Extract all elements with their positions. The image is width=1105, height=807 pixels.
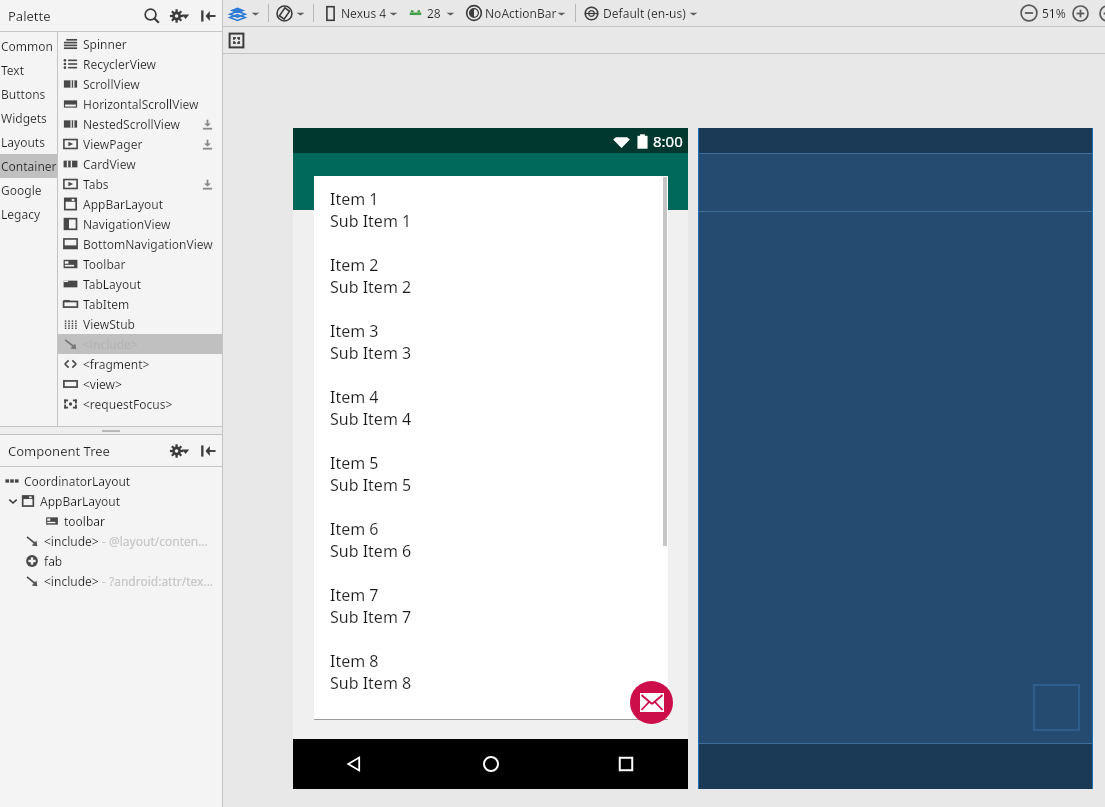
button[interactable]: Home (478, 751, 504, 777)
button[interactable]: Tree settings (169, 441, 189, 461)
button[interactable]: Show constraints (229, 33, 244, 48)
button[interactable]: fab outline (1033, 684, 1080, 731)
staticText: Item 4 (330, 386, 379, 408)
staticText: - @layout/conten... (102, 533, 208, 549)
staticText: Item 7 (330, 584, 379, 606)
button[interactable]: Orientation (276, 5, 293, 22)
button[interactable]: TabItem (58, 294, 222, 314)
staticText: Toolbar (83, 256, 126, 272)
button[interactable]: fab (0, 551, 222, 571)
staticText: toolbar (64, 513, 106, 529)
staticText: Sub Item 1 (330, 210, 412, 232)
button[interactable]: <include> (0, 571, 222, 591)
button[interactable]: Spinner (58, 34, 222, 54)
staticText: Item 6 (330, 518, 379, 540)
staticText: Sub Item 5 (330, 474, 412, 496)
button[interactable]: <include> (0, 531, 222, 551)
button[interactable]: <fragment> (58, 354, 222, 374)
staticText: - ?android:attr/tex... (102, 573, 214, 589)
button[interactable]: API level 28 (408, 7, 423, 20)
button[interactable]: Tabs (58, 174, 222, 194)
staticText: TabItem (83, 296, 130, 312)
button[interactable]: Containers (0, 154, 57, 178)
button[interactable]: NestedScrollView (58, 114, 222, 134)
staticText: ViewStub (83, 316, 135, 332)
button[interactable]: Zoom out (1020, 4, 1038, 22)
button[interactable]: Common (0, 34, 57, 58)
button[interactable]: Back (341, 751, 367, 777)
staticText: Google (1, 182, 42, 198)
button[interactable]: <requestFocus> (58, 394, 222, 414)
staticText: 51% (1042, 5, 1066, 21)
staticText: Nexus 4 (341, 5, 387, 21)
button[interactable]: ViewStub (58, 314, 222, 334)
staticText: TabLayout (83, 276, 141, 292)
staticText: Sub Item 8 (330, 672, 412, 694)
staticText: NestedScrollView (83, 116, 180, 132)
staticText: 8:00 (653, 131, 683, 151)
staticText: Spinner (83, 36, 127, 52)
staticText: <include> (44, 533, 99, 549)
staticText: BottomNavigationView (83, 236, 213, 252)
staticText: AppBarLayout (40, 493, 121, 509)
staticText: Item 5 (330, 452, 379, 474)
button[interactable]: TabLayout (58, 274, 222, 294)
staticText: Common (1, 38, 53, 54)
button[interactable]: RecyclerView (58, 54, 222, 74)
button[interactable]: Widgets (0, 106, 57, 130)
button[interactable]: Hide palette (199, 7, 217, 25)
button[interactable]: CardView (58, 154, 222, 174)
button[interactable]: Locale: Default (en-us) (584, 6, 599, 21)
staticText: NoActionBar (485, 5, 557, 21)
button[interactable]: Palette settings (169, 6, 189, 26)
button[interactable]: Hide tree (199, 442, 217, 460)
button[interactable]: Text (0, 58, 57, 82)
staticText: 28 (427, 5, 441, 21)
button[interactable]: Legacy (0, 202, 57, 226)
button[interactable]: Search (143, 7, 161, 25)
staticText: Item 3 (330, 320, 379, 342)
staticText: Widgets (1, 110, 47, 126)
button[interactable]: AppBarLayout (58, 194, 222, 214)
button[interactable]: HorizontalScrollView (58, 94, 222, 114)
staticText: Sub Item 4 (330, 408, 412, 430)
staticText: Text (1, 62, 25, 78)
button[interactable]: CoordinatorLayout (0, 471, 222, 491)
button[interactable]: AppBarLayout (0, 491, 222, 511)
button[interactable]: Device: Nexus 4 (323, 5, 338, 22)
staticText: ViewPager (83, 136, 143, 152)
staticText: ScrollView (83, 76, 140, 92)
staticText: Item 2 (330, 254, 379, 276)
staticText: Sub Item 7 (330, 606, 412, 628)
button[interactable]: NavigationView (58, 214, 222, 234)
staticText: <fragment> (83, 356, 150, 372)
button[interactable]: Theme: NoActionBar (466, 5, 482, 21)
button[interactable]: ScrollView (58, 74, 222, 94)
button[interactable]: <view> (58, 374, 222, 394)
button[interactable]: BottomNavigationView (58, 234, 222, 254)
staticText: CardView (83, 156, 136, 172)
staticText: Layouts (1, 134, 45, 150)
staticText: Palette (8, 7, 51, 25)
button[interactable]: Recents (613, 751, 639, 777)
button[interactable]: Toolbar (58, 254, 222, 274)
staticText: Default (en-us) (603, 5, 686, 21)
button[interactable]: Compose email (630, 681, 673, 724)
staticText: <view> (83, 376, 122, 392)
staticText: Legacy (1, 206, 41, 222)
staticText: Sub Item 2 (330, 276, 412, 298)
button[interactable]: toolbar (0, 511, 222, 531)
button[interactable]: Design surface mode (229, 5, 246, 22)
staticText: NavigationView (83, 216, 171, 232)
button[interactable]: Layouts (0, 130, 57, 154)
staticText: Item 1 (330, 188, 379, 210)
staticText: Item 8 (330, 650, 379, 672)
button[interactable]: Zoom to fit (1099, 5, 1105, 22)
button[interactable]: Google (0, 178, 57, 202)
button[interactable]: Buttons (0, 82, 57, 106)
button[interactable]: ViewPager (58, 134, 222, 154)
staticText: fab (44, 553, 63, 569)
button[interactable]: Zoom in (1072, 5, 1089, 22)
staticText: Sub Item 3 (330, 342, 412, 364)
button[interactable]: <include> (58, 334, 222, 354)
